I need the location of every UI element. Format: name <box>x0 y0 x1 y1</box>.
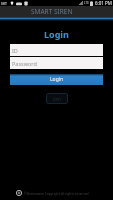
staticText: SKT <box>1 1 8 6</box>
staticText: Password <box>12 60 37 67</box>
staticText: Login <box>50 76 64 83</box>
staticText: Login <box>44 28 69 40</box>
button[interactable]: Password <box>10 57 103 69</box>
staticText: SMART SIREN <box>31 7 73 16</box>
staticText: ID <box>12 47 18 54</box>
staticText: ©Greenware Copyright all rights reserved <box>24 191 89 195</box>
staticText: 6:01 PM <box>95 0 112 6</box>
button[interactable]: Join <box>46 93 68 104</box>
button[interactable]: ID <box>10 44 103 56</box>
staticText: Join <box>53 96 61 102</box>
staticText: LTE <box>84 1 89 5</box>
button[interactable]: Login <box>10 74 103 85</box>
